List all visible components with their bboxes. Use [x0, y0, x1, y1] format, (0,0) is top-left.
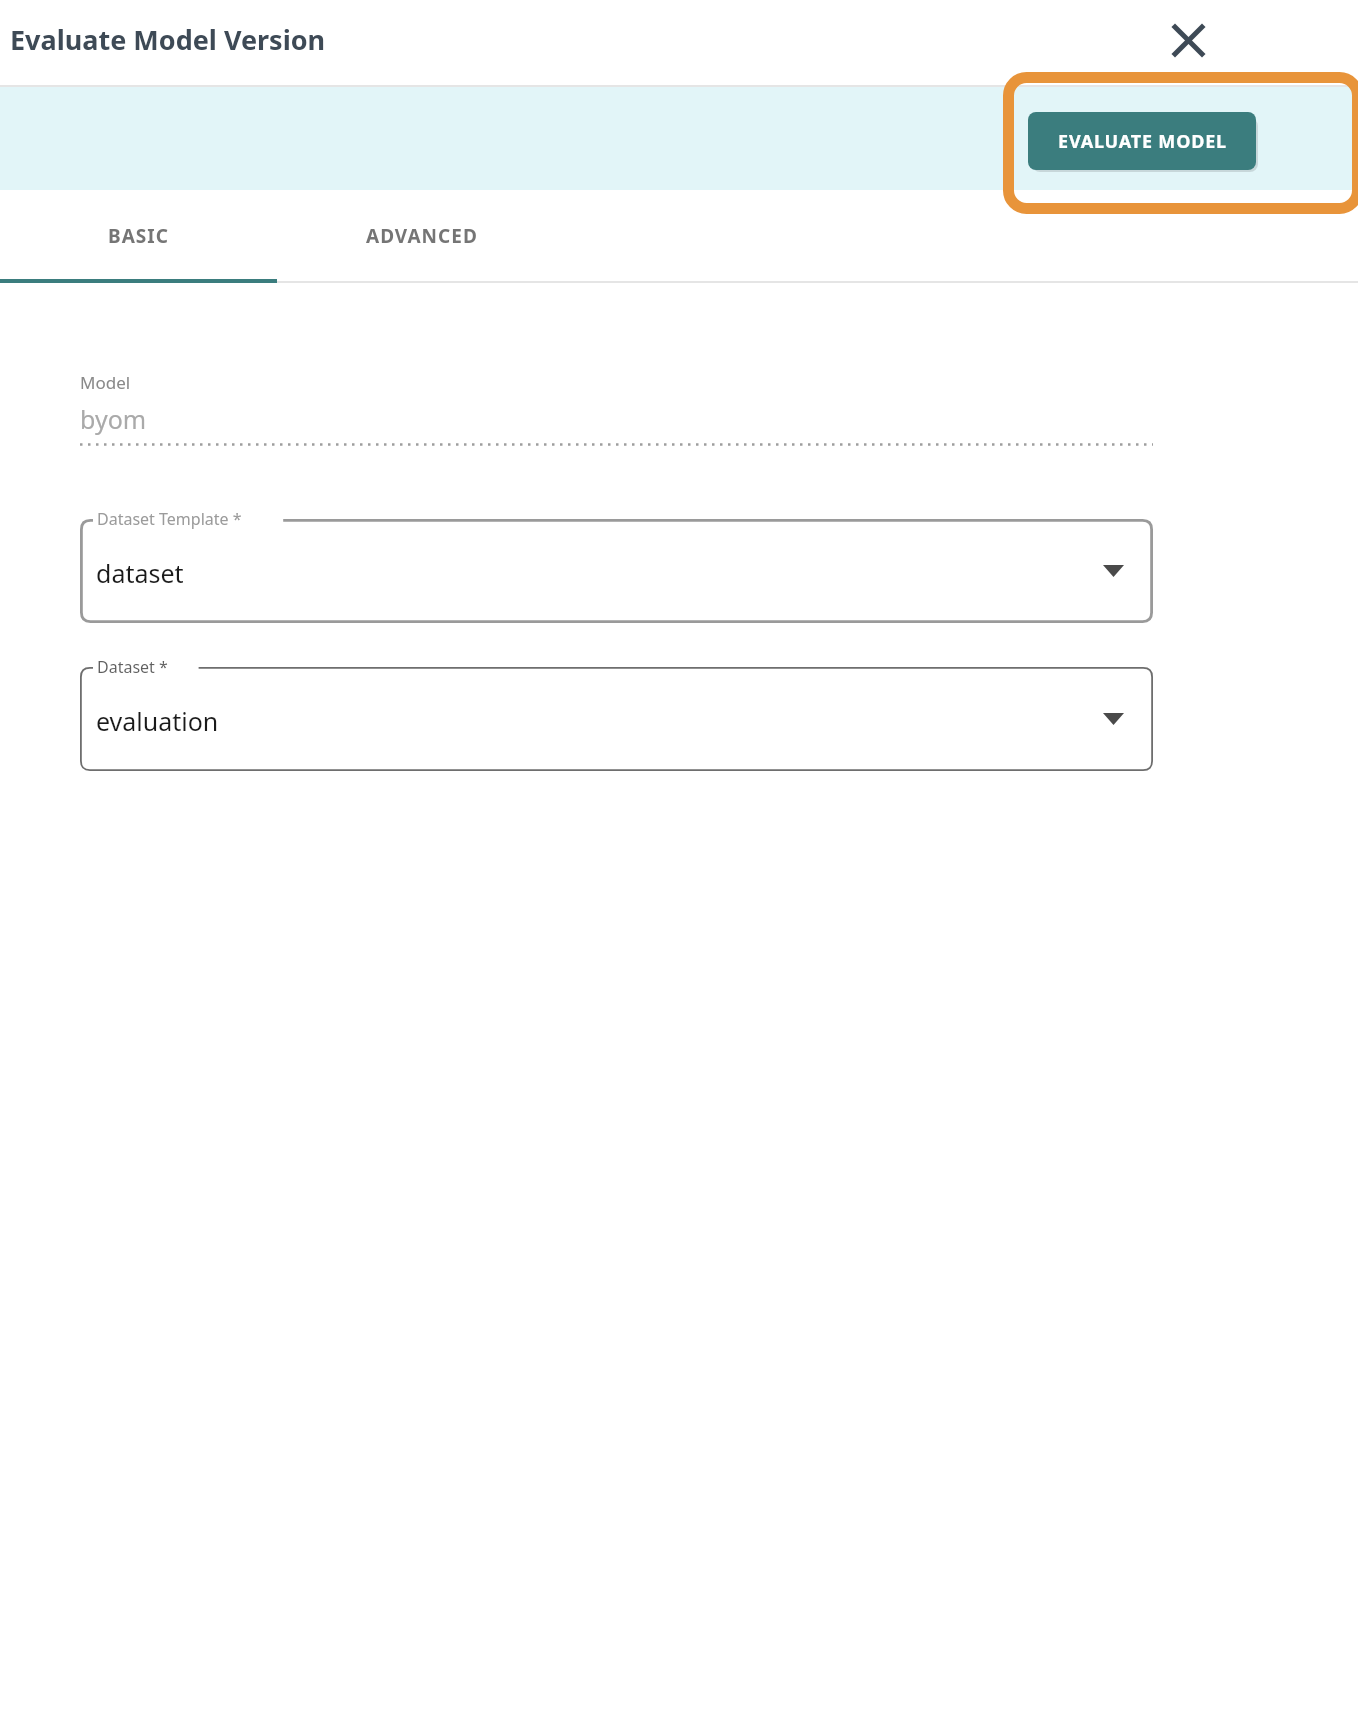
button[interactable]: ADVANCED — [277, 190, 567, 282]
other: Open dropdown — [1095, 701, 1131, 737]
button[interactable]: Close — [1158, 10, 1218, 70]
other: Open dropdown — [1095, 553, 1131, 589]
staticText: EVALUATE MODEL — [1058, 129, 1227, 154]
staticText: BASIC — [108, 223, 169, 249]
button[interactable]: Dataset Template * — [80, 519, 1153, 623]
staticText: Dataset * — [97, 656, 168, 678]
staticText: ADVANCED — [366, 223, 478, 249]
staticText: Dataset Template * — [97, 508, 242, 530]
staticText: byom — [80, 402, 147, 436]
staticText: Evaluate Model Version — [10, 21, 326, 58]
staticText: dataset — [96, 556, 184, 590]
button[interactable]: Dataset * — [80, 667, 1153, 771]
button[interactable]: EVALUATE MODEL — [1028, 112, 1256, 170]
staticText: evaluation — [96, 704, 219, 738]
staticText: Model — [80, 371, 131, 394]
button[interactable]: BASIC — [0, 190, 277, 282]
